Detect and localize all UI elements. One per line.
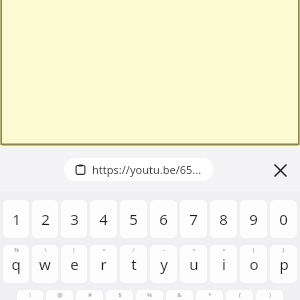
staticText: % (147, 291, 152, 299)
button[interactable]: 9 (240, 200, 267, 238)
staticText: https://youtu.be/65... (92, 162, 202, 177)
staticText: 0 (279, 209, 288, 229)
button[interactable]: % (136, 290, 163, 300)
staticText: ~ (162, 246, 166, 254)
staticText: 7 (189, 209, 198, 229)
staticText: < (192, 246, 196, 254)
staticText: & (177, 291, 182, 299)
button[interactable]: ) (256, 290, 283, 300)
staticText: 5 (129, 209, 138, 229)
staticText: p (279, 254, 289, 274)
button[interactable]: > (210, 245, 237, 283)
button[interactable]: ( (226, 290, 253, 300)
button[interactable]: 5 (120, 200, 147, 238)
staticText: > (222, 246, 226, 254)
staticText: @ (57, 291, 63, 299)
staticText: 2 (41, 209, 50, 229)
staticText: ) (269, 291, 271, 299)
staticText: q (11, 254, 21, 274)
button[interactable]: # (76, 290, 103, 300)
button[interactable]: ! (17, 290, 43, 300)
staticText: # (88, 291, 92, 299)
button[interactable]: 8 (210, 200, 237, 238)
button[interactable]: 0 (270, 200, 297, 238)
staticText: $ (118, 291, 122, 299)
staticText: i (222, 254, 226, 274)
staticText: e (70, 254, 79, 274)
staticText: ( (239, 291, 241, 299)
button[interactable]: = (90, 245, 117, 283)
staticText: * (208, 291, 212, 299)
button[interactable]: https://youtu.be/65... (64, 158, 213, 181)
button[interactable]: 7 (180, 200, 207, 238)
staticText: 6 (159, 209, 168, 229)
button[interactable]: * (196, 290, 223, 300)
staticText: 1 (12, 209, 21, 229)
staticText: w (39, 254, 51, 274)
staticText: 8 (219, 209, 228, 229)
button[interactable]: $ (106, 290, 133, 300)
staticText: / (132, 246, 135, 254)
button[interactable]: } (270, 245, 297, 283)
button[interactable]: ~ (150, 245, 177, 283)
staticText: y (160, 254, 168, 274)
staticText: o (249, 254, 259, 274)
button[interactable]: 6 (150, 200, 177, 238)
button[interactable]: & (166, 290, 193, 300)
button[interactable]: / (120, 245, 147, 283)
staticText: \ (44, 246, 47, 254)
staticText: } (282, 246, 285, 254)
button[interactable]: 1 (3, 200, 29, 238)
button[interactable]: 4 (90, 200, 117, 238)
button[interactable]: < (180, 245, 207, 283)
staticText: u (189, 254, 199, 274)
button[interactable]: 2 (32, 200, 58, 238)
staticText: t (131, 254, 137, 274)
staticText: { (252, 246, 255, 254)
staticText: ! (29, 291, 31, 299)
staticText: | (72, 246, 76, 254)
button[interactable]: % (3, 245, 29, 283)
staticText: 4 (99, 209, 108, 229)
button[interactable]: | (61, 245, 87, 283)
button[interactable]: 3 (61, 200, 87, 238)
staticText: 3 (70, 209, 79, 229)
staticText: = (102, 246, 106, 254)
staticText: % (14, 246, 19, 254)
button[interactable]: Close (266, 156, 294, 184)
staticText: r (100, 254, 107, 274)
button[interactable]: \ (32, 245, 58, 283)
staticText: 9 (249, 209, 258, 229)
button[interactable]: { (240, 245, 267, 283)
button[interactable]: @ (46, 290, 73, 300)
